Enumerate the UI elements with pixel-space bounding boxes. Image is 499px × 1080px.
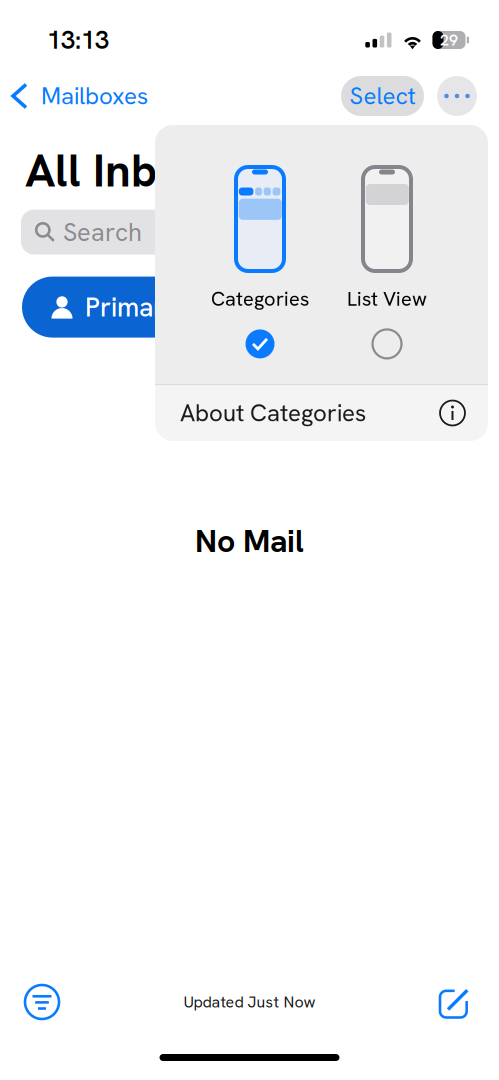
button[interactable]: About Categories [155, 385, 488, 441]
staticText: Mailboxes [41, 81, 148, 111]
button[interactable]: Categories [208, 125, 312, 384]
staticText: Primary [85, 290, 178, 324]
staticText: No Mail [195, 521, 304, 561]
staticText: All Inbox [25, 142, 207, 200]
staticText: About Categories [180, 398, 366, 428]
staticText: Categories [211, 286, 309, 311]
button[interactable]: Compose [429, 975, 482, 1028]
staticText: 13:13 [47, 24, 109, 56]
button[interactable]: List View [335, 125, 439, 384]
button[interactable]: Filter [14, 974, 70, 1030]
staticText: 29 [440, 30, 458, 50]
staticText: Search [63, 216, 142, 248]
button[interactable]: More [437, 76, 477, 116]
staticText: Updated Just Now [183, 992, 315, 1012]
button[interactable]: Mailboxes [0, 72, 148, 120]
button[interactable]: Primary [22, 277, 206, 338]
button[interactable]: Select [341, 76, 424, 116]
staticText: List View [347, 286, 427, 311]
staticText: Select [349, 81, 415, 111]
